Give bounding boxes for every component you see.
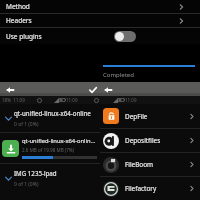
staticText: DepFile	[125, 112, 190, 121]
button[interactable]: Filefactory	[100, 177, 200, 200]
staticText: 2.6 MB of 19.98 MB (7%)	[22, 147, 75, 153]
staticText: 11:09	[125, 97, 137, 103]
staticText: Headers	[6, 16, 179, 25]
button[interactable]: Back	[102, 84, 113, 95]
staticText: Depositfiles	[125, 136, 190, 145]
button[interactable]: DepFile	[100, 104, 200, 128]
staticText: Completed	[103, 71, 134, 79]
staticText: 0 of 1 (0%)	[14, 121, 39, 128]
button[interactable]: IMG 1235-lpad	[0, 164, 100, 192]
button[interactable]: Use plugins	[0, 28, 200, 44]
button[interactable]: qt-unified-linux-x64-onlin…	[0, 133, 100, 163]
button[interactable]: qt-unified-linux-x64-online	[0, 104, 100, 132]
button[interactable]: Method	[0, 0, 200, 13]
button[interactable]: Depositfiles	[100, 129, 200, 152]
staticText: Method	[6, 2, 179, 11]
staticText: qt-unified-linux-x64-online	[14, 109, 91, 117]
button[interactable]: FileBoom	[100, 153, 200, 176]
button[interactable]: Confirm	[87, 84, 98, 95]
staticText: 0 of 1 (0%)	[14, 181, 39, 188]
staticText: FileBoom	[125, 160, 190, 169]
staticText: IMG 1235-lpad	[14, 169, 57, 177]
staticText: Filefactory	[125, 184, 190, 193]
staticText: Use plugins	[6, 32, 114, 41]
staticText: 11:09	[66, 97, 78, 103]
staticText: 18% 11:09	[2, 97, 25, 103]
staticText: qt-unified-linux-x64-onlin…	[22, 137, 96, 145]
button[interactable]: Headers	[0, 14, 200, 27]
button[interactable]: Back	[4, 84, 15, 95]
